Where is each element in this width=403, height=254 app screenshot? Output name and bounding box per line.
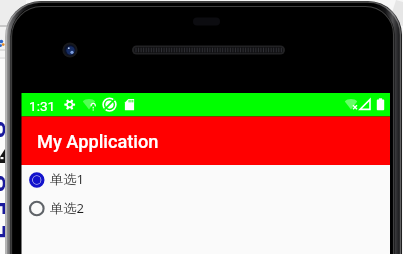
staticText: 1:31	[29, 98, 56, 114]
button[interactable]: 单选2	[21, 196, 390, 219]
staticText: My Application	[37, 131, 159, 152]
button[interactable]: My Application	[21, 117, 390, 165]
staticText: 单选2	[50, 199, 84, 217]
button[interactable]: 单选1	[21, 167, 390, 190]
staticText: 单选1	[50, 170, 84, 188]
